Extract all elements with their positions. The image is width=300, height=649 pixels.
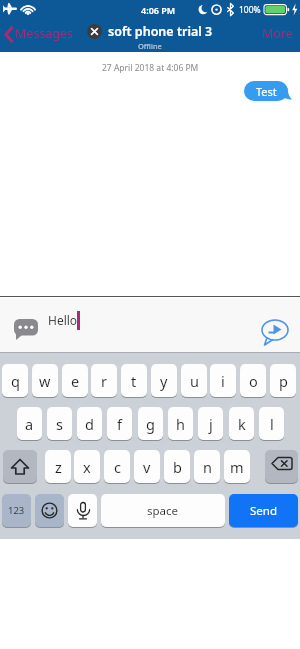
button[interactable]: x: [74, 450, 100, 483]
staticText: 123: [8, 504, 25, 517]
button[interactable]: [261, 318, 291, 346]
button[interactable]: [68, 494, 97, 527]
button[interactable]: q: [2, 364, 28, 397]
button[interactable]: g: [138, 407, 163, 440]
button[interactable]: i: [210, 364, 236, 397]
staticText: m: [230, 457, 244, 477]
staticText: g: [146, 414, 155, 434]
staticText: Messages: [15, 25, 74, 42]
button[interactable]: m: [224, 450, 250, 483]
staticText: l: [270, 414, 274, 434]
button[interactable]: n: [194, 450, 220, 483]
button[interactable]: c: [104, 450, 130, 483]
button[interactable]: l: [259, 407, 284, 440]
button[interactable]: a: [17, 407, 42, 440]
staticText: soft phone trial 3: [108, 23, 213, 40]
button[interactable]: h: [168, 407, 193, 440]
staticText: p: [279, 371, 288, 391]
button[interactable]: o: [240, 364, 266, 397]
staticText: q: [11, 371, 20, 391]
button[interactable]: [3, 450, 37, 483]
staticText: r: [101, 371, 107, 391]
staticText: d: [85, 414, 94, 434]
staticText: n: [203, 457, 212, 477]
button[interactable]: Messages: [15, 24, 74, 42]
button[interactable]: d: [77, 407, 102, 440]
staticText: 4:06 PM: [141, 4, 176, 16]
staticText: j: [209, 414, 213, 434]
staticText: x: [83, 457, 91, 477]
button[interactable]: 123: [2, 494, 31, 527]
staticText: Test: [256, 84, 277, 99]
button[interactable]: Test: [244, 81, 288, 101]
button[interactable]: [35, 494, 64, 527]
staticText: 100%: [239, 4, 261, 16]
staticText: h: [176, 414, 185, 434]
staticText: b: [173, 457, 182, 477]
staticText: y: [160, 371, 168, 391]
button[interactable]: y: [151, 364, 177, 397]
staticText: c: [114, 457, 121, 477]
button[interactable]: v: [134, 450, 160, 483]
staticText: u: [190, 371, 199, 391]
button[interactable]: More: [256, 24, 298, 42]
staticText: e: [71, 371, 80, 391]
button[interactable]: p: [270, 364, 296, 397]
button[interactable]: space: [101, 494, 225, 527]
button[interactable]: k: [229, 407, 254, 440]
button[interactable]: e: [62, 364, 88, 397]
staticText: i: [221, 371, 225, 391]
button[interactable]: r: [91, 364, 117, 397]
button[interactable]: t: [121, 364, 147, 397]
staticText: a: [25, 414, 34, 434]
button[interactable]: z: [45, 450, 71, 483]
staticText: Send: [250, 503, 277, 519]
button[interactable]: [265, 450, 298, 483]
button[interactable]: w: [32, 364, 58, 397]
button[interactable]: j: [198, 407, 223, 440]
staticText: z: [55, 457, 62, 477]
staticText: 27 April 2018 at 4:06 PM: [102, 62, 199, 74]
staticText: space: [147, 503, 179, 519]
staticText: v: [143, 457, 151, 477]
staticText: w: [39, 371, 51, 391]
staticText: o: [249, 371, 258, 391]
staticText: k: [238, 414, 246, 434]
staticText: f: [117, 414, 122, 434]
button[interactable]: b: [164, 450, 190, 483]
staticText: t: [131, 371, 137, 391]
button[interactable]: Send: [229, 494, 298, 527]
button[interactable]: s: [47, 407, 72, 440]
staticText: Hello: [48, 312, 78, 328]
staticText: s: [56, 414, 63, 434]
staticText: More: [262, 25, 293, 42]
staticText: Offline: [138, 41, 162, 51]
button[interactable]: u: [181, 364, 207, 397]
button[interactable]: f: [107, 407, 132, 440]
